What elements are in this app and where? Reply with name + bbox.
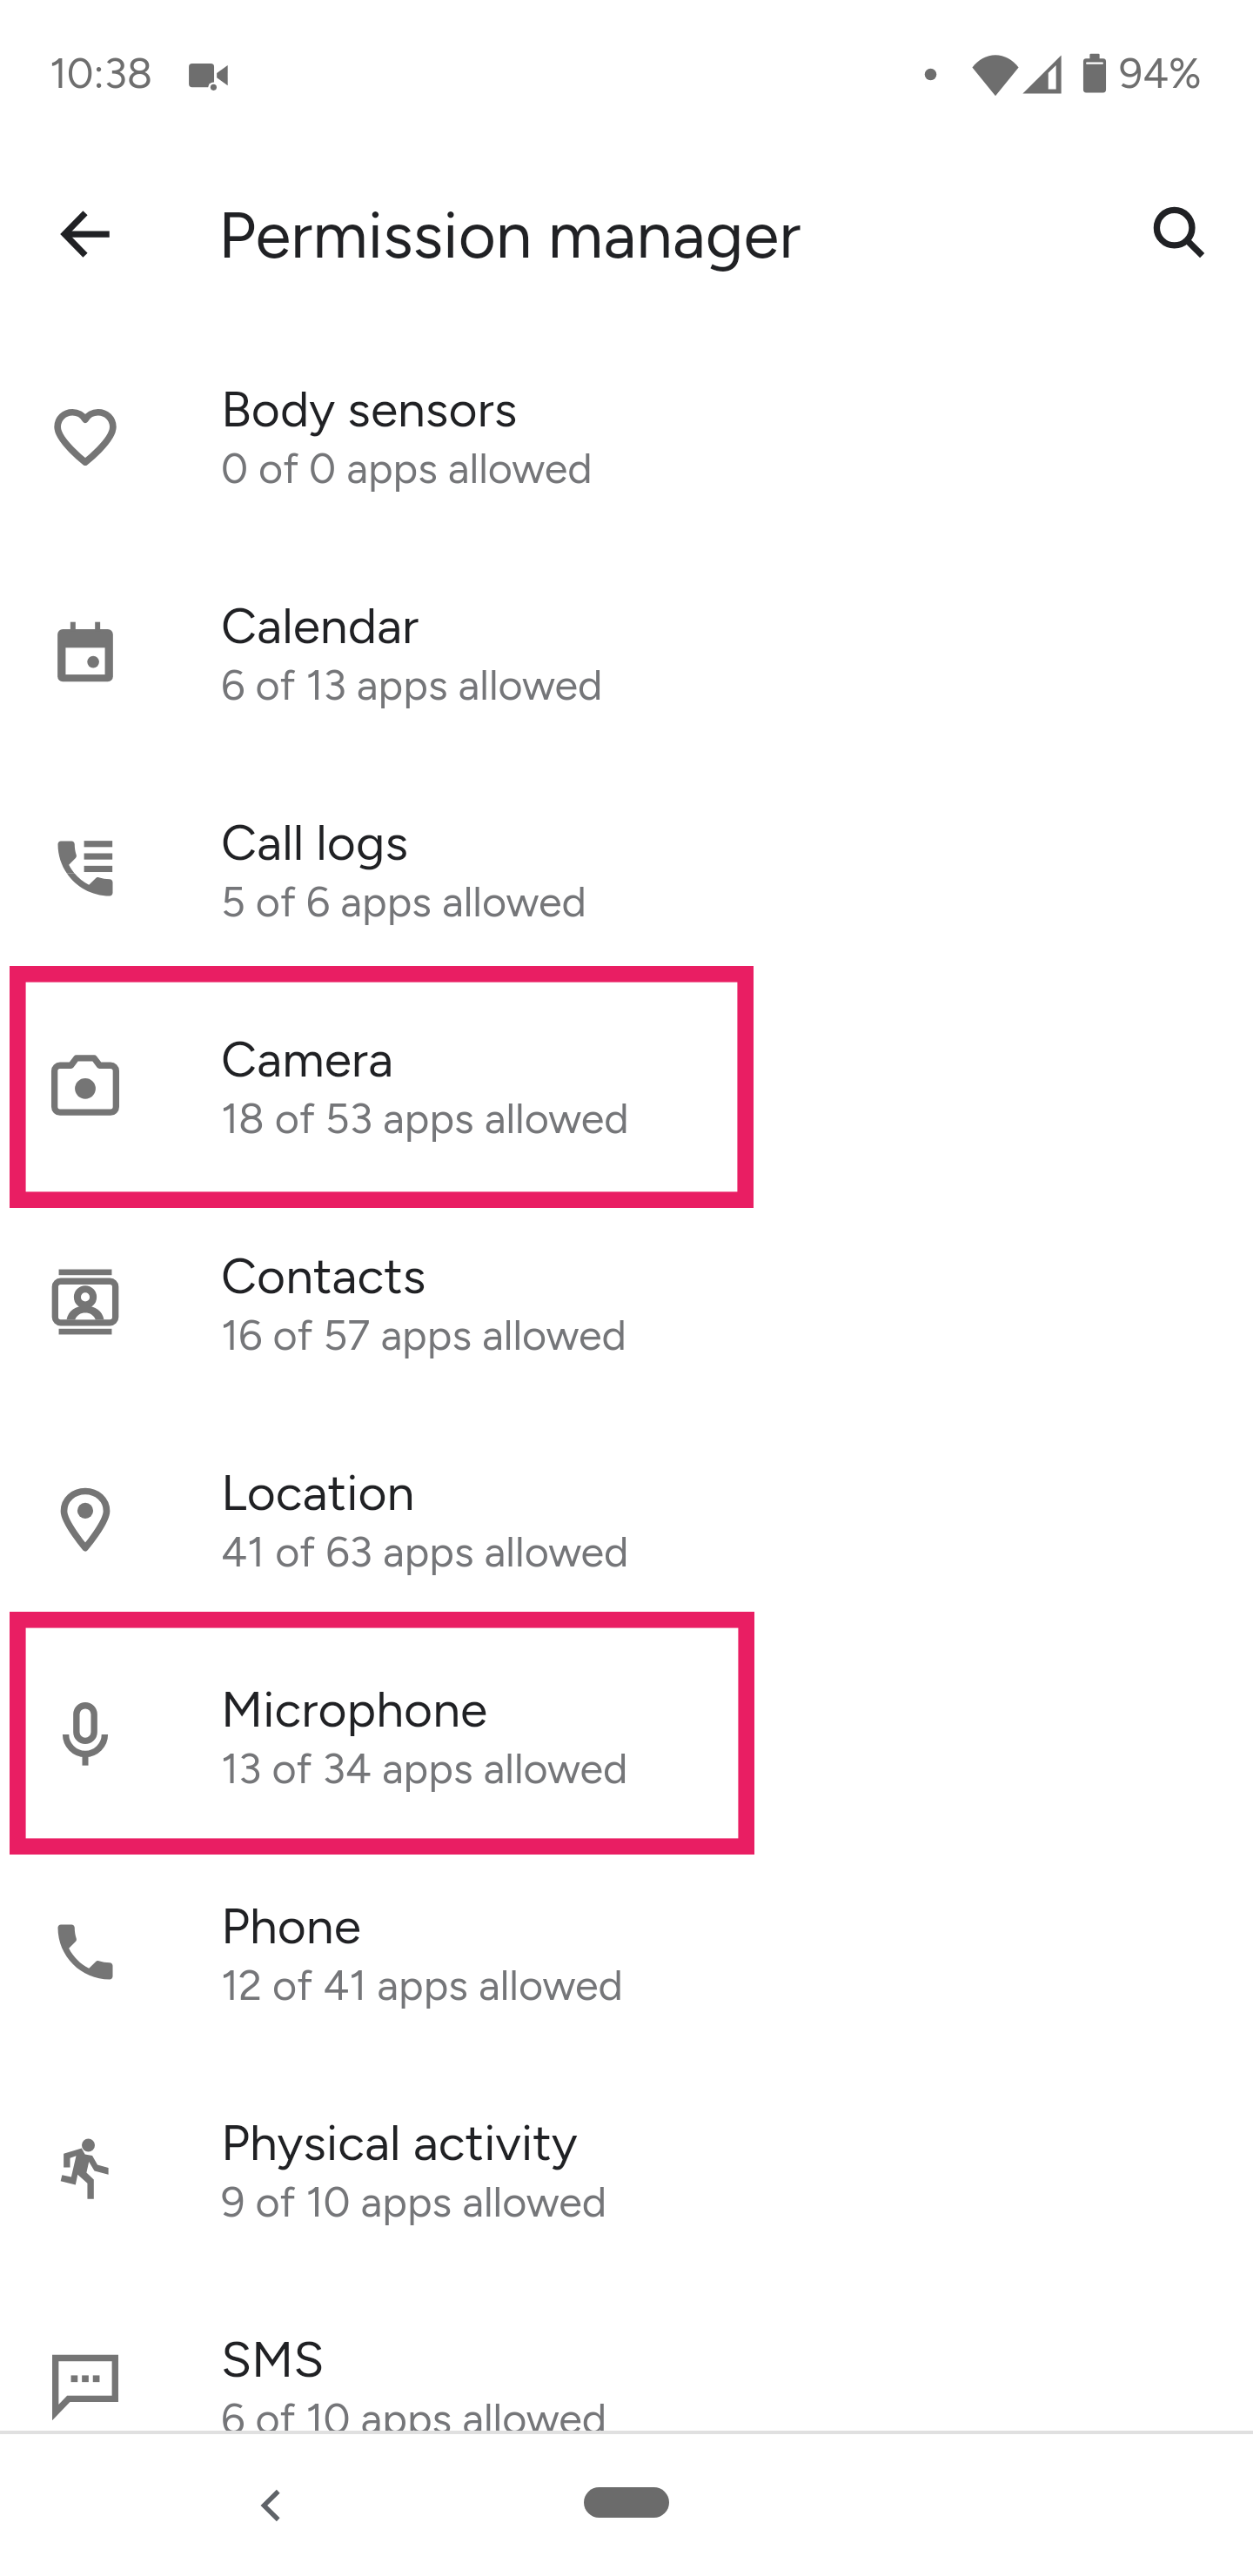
staticText: 10:38 [50, 48, 153, 98]
button[interactable]: Back [210, 2445, 332, 2566]
staticText: Body sensors [221, 379, 518, 439]
staticText: 13 of 34 apps allowed [221, 1743, 628, 1794]
button[interactable]: Home [584, 2487, 669, 2518]
staticText: 41 of 63 apps allowed [221, 1526, 629, 1577]
button[interactable]: Calendar [0, 553, 1253, 769]
button[interactable]: Contacts [0, 1203, 1253, 1419]
staticText: Camera [221, 1030, 394, 1089]
staticText: 6 of 13 apps allowed [221, 660, 603, 710]
staticText: SMS [221, 2330, 325, 2389]
staticText: 0 of 0 apps allowed [221, 443, 593, 493]
staticText: 9 of 10 apps allowed [221, 2177, 607, 2227]
staticText: Microphone [221, 1680, 488, 1739]
staticText: 94% [1119, 48, 1202, 98]
staticText: Phone [221, 1896, 361, 1955]
button[interactable]: Call logs [0, 769, 1253, 986]
button[interactable]: SMS [0, 2286, 1253, 2503]
button[interactable]: Search [1109, 163, 1249, 302]
button[interactable]: Microphone [0, 1636, 1253, 1853]
staticText: Permission manager [218, 196, 801, 273]
staticText: Contacts [221, 1246, 426, 1305]
staticText: Location [221, 1463, 415, 1522]
staticText: 18 of 53 apps allowed [221, 1093, 629, 1144]
staticText: 5 of 6 apps allowed [221, 876, 586, 927]
staticText: Call logs [221, 813, 408, 872]
staticText: 16 of 57 apps allowed [221, 1310, 626, 1360]
staticText: 6 of 10 apps allowed [221, 2393, 607, 2444]
button[interactable]: Back [17, 164, 157, 304]
staticText: Calendar [221, 596, 419, 655]
button[interactable]: Phone [0, 1853, 1253, 2070]
staticText: 12 of 41 apps allowed [221, 1960, 623, 2010]
staticText: Physical activity [221, 2113, 578, 2172]
button[interactable]: Physical activity [0, 2070, 1253, 2286]
button[interactable]: Body sensors [0, 336, 1253, 553]
button[interactable]: Camera [0, 986, 1253, 1203]
button[interactable]: Location [0, 1419, 1253, 1636]
